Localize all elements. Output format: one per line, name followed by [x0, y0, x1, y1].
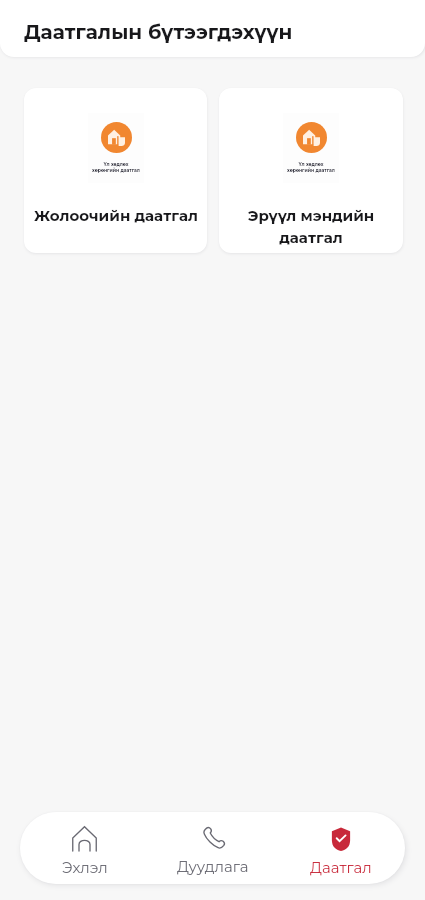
button[interactable]: Insurance — [277, 812, 405, 884]
staticText: Даатгал — [310, 858, 372, 876]
staticText: Даатгалын бүтээгдэхүүн — [24, 20, 293, 44]
button[interactable]: Үл хөдлөх хөрөнгийн даатгал — [219, 88, 403, 253]
button[interactable]: Calls — [149, 812, 277, 884]
staticText: Жолоочийн даатгал — [34, 206, 198, 224]
other: Calls — [202, 827, 225, 850]
button[interactable]: Үл хөдлөх хөрөнгийн даатгал — [24, 88, 207, 253]
staticText: Үл хөдлөх хөрөнгийн даатгал — [92, 162, 140, 174]
staticText: Дуудлага — [177, 857, 249, 875]
staticText: Эрүүл мэндийн даатгал — [227, 206, 395, 247]
other: Insurance — [329, 827, 353, 851]
button[interactable]: Home — [20, 812, 149, 884]
other: Home — [72, 826, 97, 851]
staticText: Эхлэл — [62, 858, 108, 876]
staticText: Үл хөдлөх хөрөнгийн даатгал — [287, 162, 335, 174]
